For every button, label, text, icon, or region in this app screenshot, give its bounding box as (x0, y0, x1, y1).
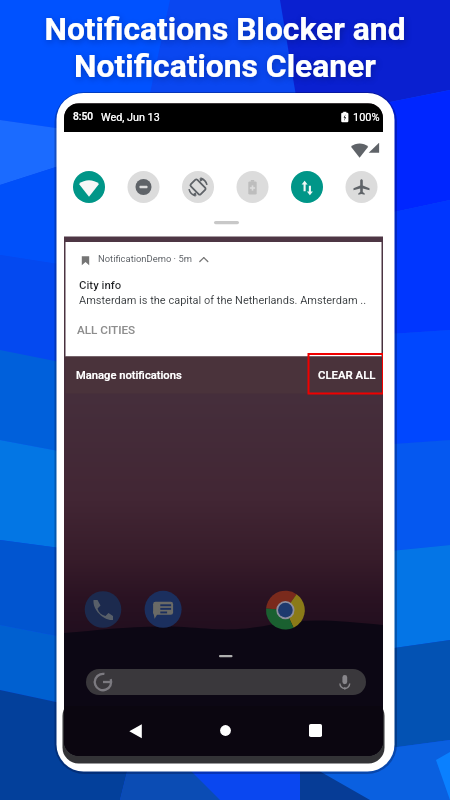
staticText: Notifications Blocker and Notifications … (0, 10, 450, 85)
button[interactable]: Manage notifications (65, 357, 195, 394)
button[interactable]: Do not disturb (128, 171, 160, 203)
button[interactable]: Search (86, 669, 366, 695)
staticText: City info (79, 278, 122, 291)
staticText: NotificationDemo · 5m (98, 253, 192, 264)
staticText: Amsterdam is the capital of the Netherla… (79, 294, 367, 307)
button[interactable]: Back (120, 716, 152, 746)
button[interactable]: Auto rotate (182, 171, 214, 203)
staticText: 8:50 (73, 111, 94, 123)
button[interactable]: ALL CITIES (70, 317, 150, 343)
staticText: 100% (353, 111, 380, 124)
button[interactable]: Recent apps (300, 716, 332, 746)
button[interactable]: Home (210, 716, 242, 746)
button[interactable]: Wi-Fi (73, 171, 105, 203)
staticText: ALL CITIES (77, 323, 136, 337)
staticText: CLEAR ALL (318, 368, 376, 381)
button[interactable]: Phone (86, 590, 123, 627)
button[interactable]: Mobile data (291, 171, 323, 203)
staticText: Manage notifications (76, 369, 182, 382)
staticText: Wed, Jun 13 (101, 111, 160, 124)
button[interactable]: Airplane mode (346, 171, 378, 203)
button[interactable]: CLEAR ALL (309, 354, 384, 394)
button[interactable]: Battery saver (237, 171, 269, 203)
button[interactable]: Chrome (266, 589, 306, 629)
button[interactable]: Messages (146, 590, 183, 627)
